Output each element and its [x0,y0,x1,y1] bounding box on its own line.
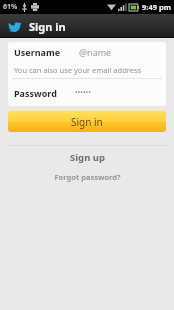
staticText: Username [14,46,61,58]
staticText: Sign up [70,151,105,164]
button[interactable]: Sign up [0,151,174,164]
button[interactable]: Forgot password? [0,172,174,182]
staticText: Sign in [29,19,66,34]
button[interactable]: Sign in [8,111,166,132]
button[interactable]: Password [8,79,166,106]
staticText: 61% [3,2,18,12]
button[interactable]: Username [8,42,166,61]
staticText: Password [14,87,57,99]
staticText: You can also use your email address [14,65,142,75]
staticText: Forgot password? [54,172,121,182]
staticText: @name [79,46,112,58]
staticText: 9:49 pm [142,2,171,12]
staticText: •••••• [75,88,91,98]
staticText: Sign in [71,115,103,129]
